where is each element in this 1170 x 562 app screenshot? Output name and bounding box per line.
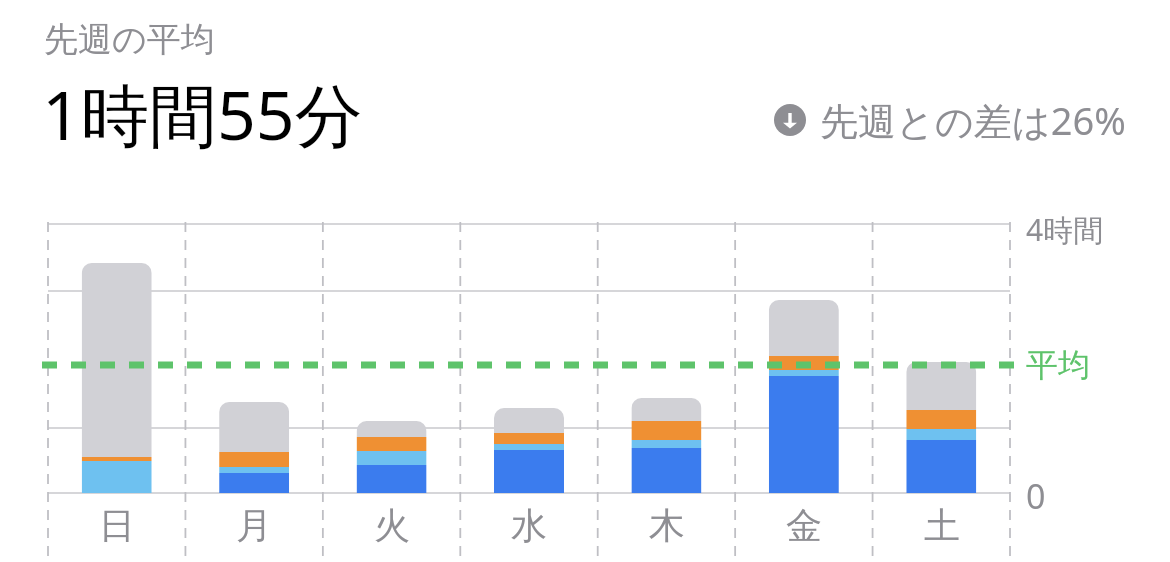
button[interactable]: 日 — [48, 503, 185, 559]
button[interactable]: 月 — [185, 503, 322, 559]
button[interactable]: 金 — [735, 503, 872, 559]
staticText: 土 — [924, 503, 960, 548]
staticText: 0 — [1026, 473, 1046, 519]
staticText: 平均 — [1026, 345, 1090, 385]
staticText: 日 — [99, 503, 135, 548]
staticText: 木 — [649, 503, 685, 548]
staticText: 月 — [236, 503, 272, 548]
button[interactable]: 減少 — [770, 94, 1170, 146]
staticText: 4時間 — [1026, 209, 1104, 250]
staticText: 水 — [511, 503, 547, 548]
button[interactable]: 火 — [323, 503, 460, 559]
other: 減少 — [770, 100, 810, 140]
button[interactable]: 木 — [598, 503, 735, 559]
staticText: 1時間55分 — [42, 67, 363, 160]
button[interactable]: 土 — [873, 503, 1010, 559]
button[interactable]: 水 — [460, 503, 597, 559]
staticText: 火 — [374, 503, 410, 548]
staticText: 金 — [786, 503, 822, 548]
staticText: 先週の平均 — [44, 18, 215, 61]
staticText: 先週との差は26% — [820, 94, 1126, 146]
